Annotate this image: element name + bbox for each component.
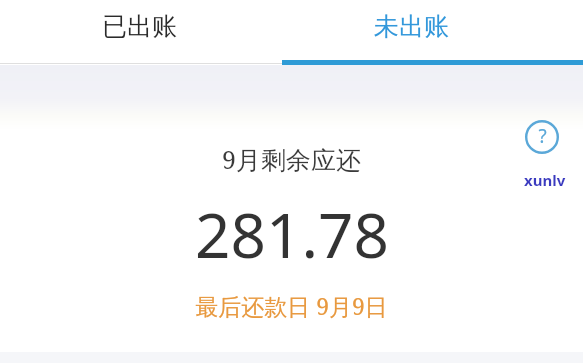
button[interactable]: 已出账 (0, 0, 282, 65)
staticText: 281.78 (195, 192, 389, 276)
staticText: 已出账 (102, 11, 177, 42)
staticText: 最后还款日 9月9日 (195, 290, 388, 321)
staticText: ? (538, 123, 547, 149)
staticText: 9月剩余应还 (222, 142, 361, 176)
staticText: xunlv (524, 170, 566, 190)
staticText: 未出账 (374, 11, 449, 42)
button[interactable]: Help (524, 119, 560, 155)
button[interactable]: 未出账 (282, 0, 583, 65)
